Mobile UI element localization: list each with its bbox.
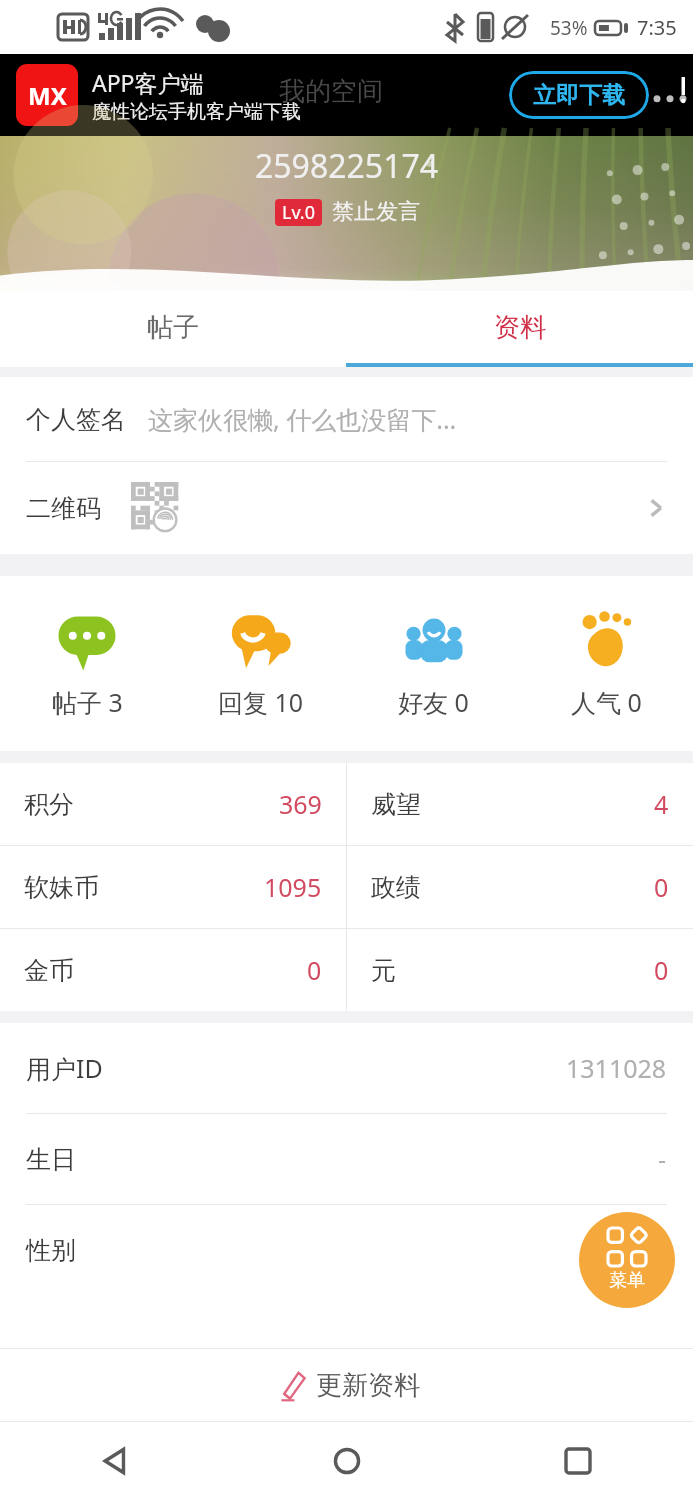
- staticText: Lv.0: [282, 200, 315, 225]
- staticText: 魔性论坛手机客户端下载: [92, 100, 301, 124]
- button[interactable]: More: [653, 71, 687, 119]
- button[interactable]: 我的空间: [0, 54, 693, 136]
- staticText: 回复 10: [218, 685, 304, 719]
- staticText: 帖子 3: [52, 685, 123, 719]
- staticText: 二维码: [26, 493, 101, 524]
- button[interactable]: 元: [347, 929, 693, 1011]
- staticText: 更新资料: [316, 1369, 420, 1402]
- staticText: 积分: [24, 789, 74, 820]
- staticText: 人气 0: [571, 685, 642, 719]
- staticText: 1095: [264, 870, 322, 904]
- staticText: 金币: [24, 955, 74, 986]
- button[interactable]: Recents: [462, 1422, 693, 1500]
- button[interactable]: 金币: [0, 929, 346, 1011]
- staticText: 菜单: [609, 1269, 645, 1292]
- button[interactable]: 立即下载: [509, 71, 649, 119]
- staticText: 0: [654, 870, 669, 904]
- staticText: 0: [307, 953, 322, 987]
- staticText: 这家伙很懒, 什么也没留下...: [148, 402, 457, 436]
- button[interactable]: 菜单: [579, 1212, 675, 1308]
- button[interactable]: 帖子 3: [0, 576, 174, 751]
- staticText: 元: [371, 955, 396, 986]
- staticText: 软妹币: [24, 872, 99, 903]
- staticText: -: [658, 1142, 667, 1176]
- staticText: 7:35: [637, 14, 677, 41]
- button[interactable]: 更新资料: [0, 1349, 693, 1421]
- staticText: APP客户端: [92, 67, 204, 98]
- button[interactable]: 回复 10: [174, 576, 347, 751]
- button[interactable]: 性别: [0, 1205, 693, 1295]
- button[interactable]: 政绩: [347, 846, 693, 928]
- staticText: 我的空间: [279, 75, 383, 108]
- staticText: 威望: [371, 789, 421, 820]
- staticText: 369: [279, 787, 322, 821]
- staticText: 生日: [26, 1144, 76, 1175]
- staticText: 1311028: [566, 1051, 667, 1085]
- staticText: 资料: [494, 311, 546, 344]
- staticText: 4: [654, 787, 669, 821]
- button[interactable]: Back: [0, 1422, 231, 1500]
- staticText: 禁止发言: [332, 198, 420, 226]
- staticText: 用户ID: [26, 1051, 103, 1085]
- staticText: 立即下载: [533, 81, 625, 110]
- button[interactable]: 生日: [0, 1114, 693, 1204]
- button[interactable]: 积分: [0, 763, 346, 845]
- staticText: 好友 0: [398, 685, 469, 719]
- button[interactable]: 威望: [347, 763, 693, 845]
- staticText: 53%: [550, 15, 588, 41]
- staticText: 政绩: [371, 872, 421, 903]
- staticText: 帖子: [147, 311, 199, 344]
- button[interactable]: 用户ID: [0, 1023, 693, 1113]
- button[interactable]: 人气 0: [520, 576, 693, 751]
- staticText: 0: [654, 953, 669, 987]
- button[interactable]: Home: [231, 1422, 462, 1500]
- staticText: 性别: [26, 1235, 76, 1266]
- button[interactable]: 资料: [346, 291, 693, 363]
- button[interactable]: 二维码: [0, 462, 693, 554]
- button[interactable]: 个人签名: [0, 377, 693, 461]
- staticText: 个人签名: [26, 404, 126, 435]
- button[interactable]: 软妹币: [0, 846, 346, 928]
- staticText: 2598225174: [255, 144, 439, 188]
- button[interactable]: 帖子: [0, 291, 346, 363]
- staticText: MX: [28, 79, 67, 112]
- button[interactable]: 好友 0: [347, 576, 520, 751]
